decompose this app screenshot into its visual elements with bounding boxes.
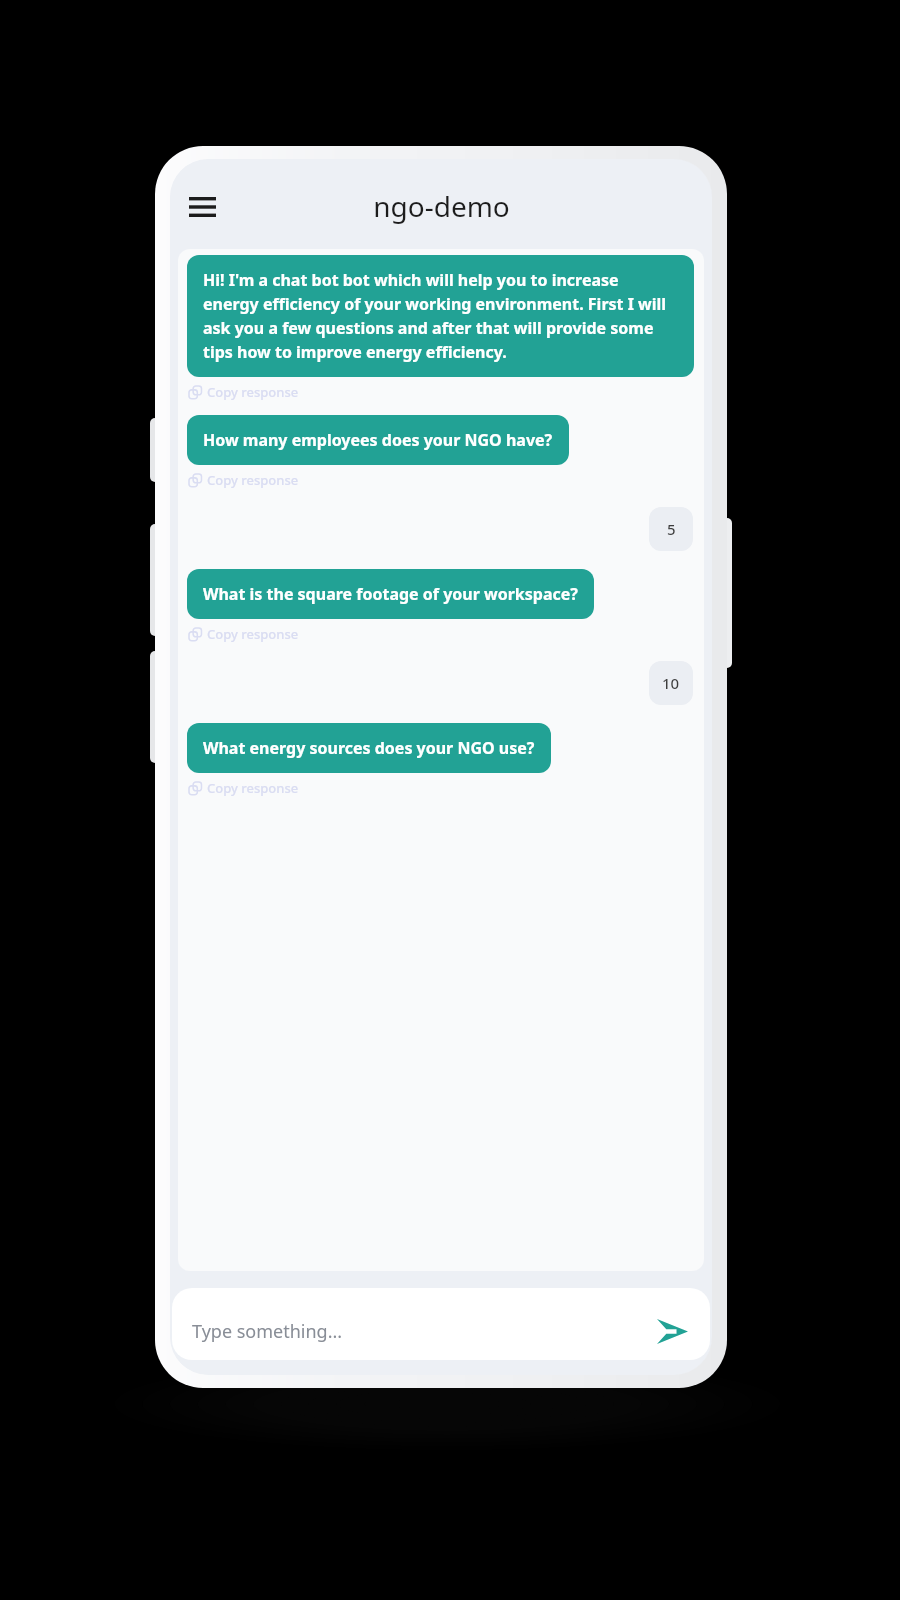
staticText: 10 bbox=[662, 673, 680, 693]
button[interactable]: 5 bbox=[649, 507, 693, 551]
button[interactable]: Type something... bbox=[192, 1319, 343, 1344]
button[interactable]: Copy response bbox=[187, 777, 301, 799]
button[interactable]: Copy response bbox=[187, 469, 301, 491]
staticText: 5 bbox=[667, 519, 676, 539]
button[interactable]: Copy response bbox=[187, 623, 301, 645]
button[interactable]: Copy response bbox=[187, 381, 301, 403]
button[interactable]: Menu bbox=[178, 183, 226, 231]
button[interactable]: What is the square footage of your works… bbox=[187, 569, 594, 619]
button[interactable]: What energy sources does your NGO use? bbox=[187, 723, 551, 773]
staticText: Hi! I'm a chat bot bot which will help y… bbox=[203, 269, 678, 363]
staticText: What energy sources does your NGO use? bbox=[203, 737, 535, 759]
staticText: Copy response bbox=[207, 779, 299, 797]
staticText: What is the square footage of your works… bbox=[203, 583, 578, 605]
button[interactable]: Send bbox=[648, 1307, 696, 1355]
staticText: How many employees does your NGO have? bbox=[203, 429, 553, 451]
staticText: Copy response bbox=[207, 383, 299, 401]
button[interactable]: How many employees does your NGO have? bbox=[187, 415, 569, 465]
staticText: Copy response bbox=[207, 471, 299, 489]
staticText: ngo-demo bbox=[373, 187, 510, 225]
button[interactable]: Hi! I'm a chat bot bot which will help y… bbox=[187, 255, 694, 377]
button[interactable]: 10 bbox=[649, 661, 693, 705]
staticText: Copy response bbox=[207, 625, 299, 643]
